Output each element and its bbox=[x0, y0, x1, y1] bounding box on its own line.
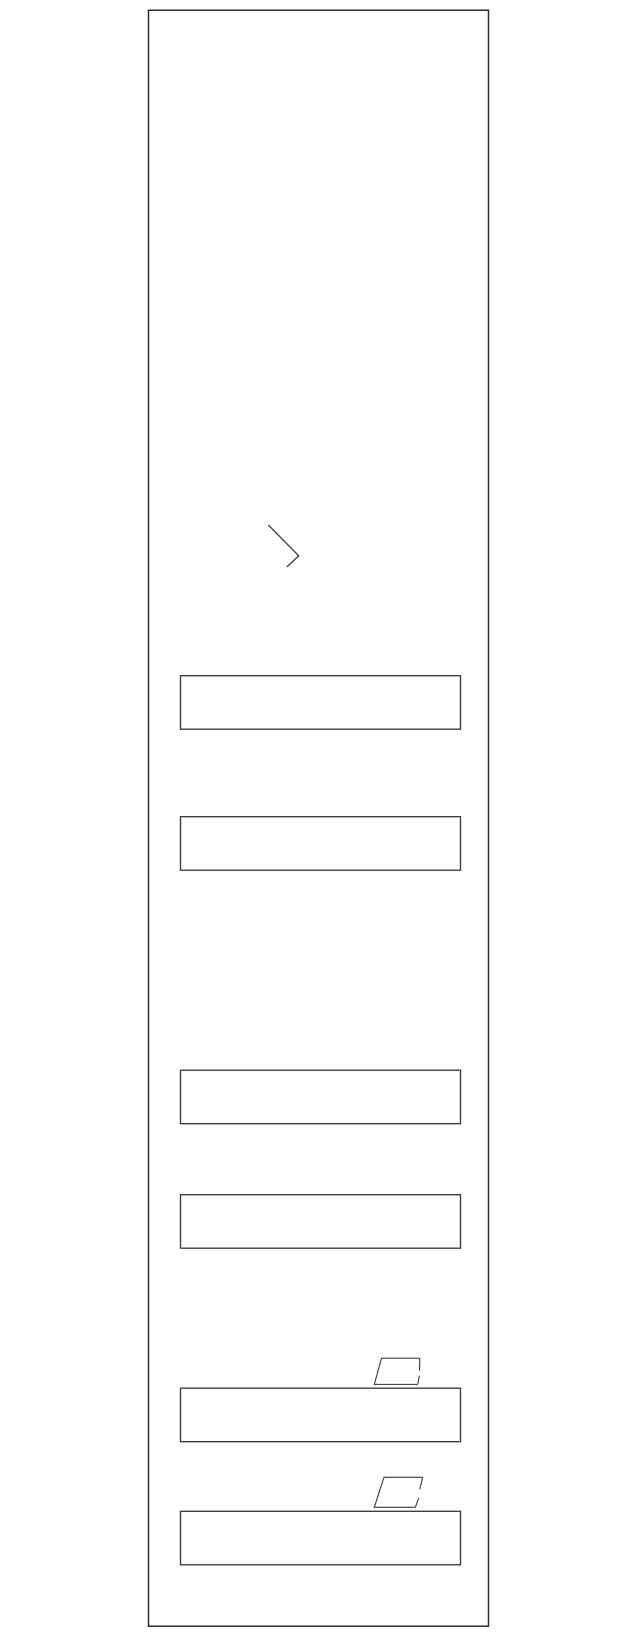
button[interactable]: Text field 2 bbox=[180, 817, 460, 870]
button[interactable]: Text field 4 bbox=[180, 1195, 460, 1248]
button[interactable]: Text field 1 bbox=[180, 676, 460, 729]
button[interactable]: Text field 3 bbox=[180, 1070, 460, 1124]
button[interactable]: Text field 5 bbox=[180, 1388, 460, 1442]
button[interactable]: Text field 6 bbox=[180, 1511, 460, 1565]
button[interactable]: Field 5 accessory bbox=[373, 1357, 420, 1385]
button[interactable]: Field 6 accessory bbox=[373, 1476, 423, 1508]
